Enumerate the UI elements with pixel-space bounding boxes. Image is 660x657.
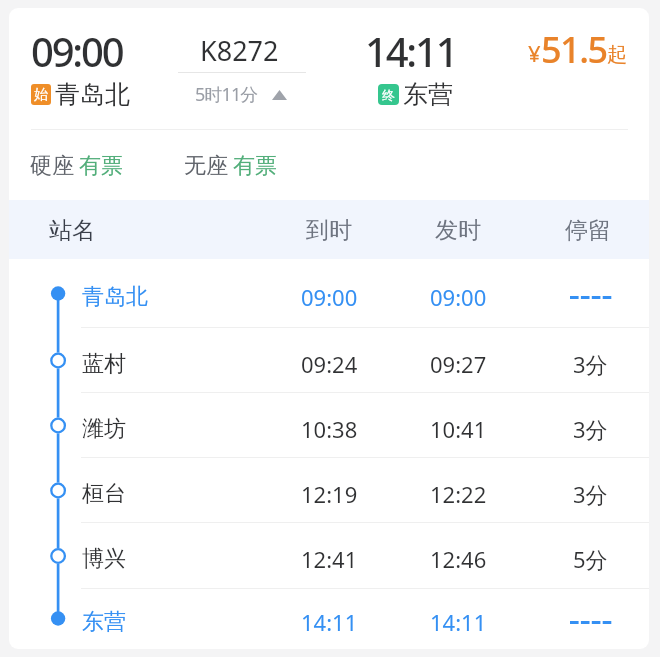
staticText: 09:00: [31, 24, 123, 78]
staticText: 起: [607, 42, 627, 67]
staticText: 站名: [49, 216, 95, 245]
staticText: 12:46: [430, 544, 487, 574]
button[interactable]: 青岛北: [9, 259, 649, 328]
button[interactable]: 东营: [9, 589, 649, 648]
staticText: 东营: [403, 79, 453, 110]
staticText: 有票: [79, 152, 123, 180]
staticText: 09:00: [430, 282, 487, 312]
staticText: 潍坊: [82, 415, 126, 443]
staticText: 12:22: [430, 479, 487, 509]
staticText: K8272: [200, 32, 279, 69]
button[interactable]: 蓝村: [9, 328, 649, 393]
staticText: 09:24: [301, 349, 358, 379]
button[interactable]: 潍坊: [9, 393, 649, 458]
staticText: ¥: [528, 38, 541, 68]
staticText: 3分: [573, 349, 608, 379]
staticText: 硬座: [30, 152, 74, 180]
staticText: 14:11: [430, 607, 487, 637]
staticText: 09:00: [301, 282, 358, 312]
staticText: 终: [382, 87, 395, 103]
staticText: 青岛北: [55, 79, 130, 110]
staticText: 桓台: [82, 480, 126, 508]
staticText: 14:11: [365, 24, 457, 78]
staticText: 无座: [184, 152, 228, 180]
staticText: 蓝村: [82, 350, 126, 378]
staticText: 东营: [82, 608, 126, 636]
staticText: 5分: [573, 544, 608, 574]
staticText: 3分: [573, 414, 608, 444]
staticText: 5时11分: [195, 82, 258, 107]
staticText: 3分: [573, 479, 608, 509]
staticText: 始: [34, 86, 48, 104]
staticText: 青岛北: [82, 283, 148, 311]
button[interactable]: 桓台: [9, 458, 649, 523]
staticText: 有票: [233, 152, 277, 180]
staticText: 到时: [306, 216, 352, 245]
staticText: 发时: [435, 216, 481, 245]
staticText: 51.5: [541, 25, 607, 74]
staticText: 09:27: [430, 349, 487, 379]
staticText: 10:41: [430, 414, 487, 444]
staticText: 10:38: [301, 414, 358, 444]
staticText: 12:19: [301, 479, 358, 509]
staticText: 14:11: [301, 607, 358, 637]
staticText: 停留: [565, 216, 611, 245]
staticText: 12:41: [301, 544, 358, 574]
staticText: 博兴: [82, 545, 126, 573]
button[interactable]: 博兴: [9, 523, 649, 589]
